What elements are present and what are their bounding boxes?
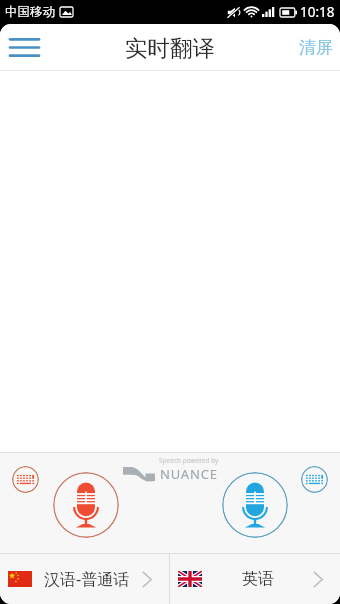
button[interactable]: Chinese keyboard input — [12, 466, 39, 493]
button[interactable]: Speak Chinese — [53, 472, 119, 538]
staticText: 英语 — [242, 569, 274, 589]
staticText: NUANCE — [160, 465, 218, 483]
button[interactable]: Speak English — [222, 472, 288, 538]
button[interactable]: English keyboard input — [301, 466, 328, 493]
staticText: 实时翻译 — [125, 34, 215, 62]
button[interactable]: 英语 — [170, 554, 340, 604]
staticText: 10:18 — [300, 3, 335, 21]
staticText: 汉语-普通话 — [44, 568, 130, 590]
button[interactable]: 清屏 — [292, 24, 340, 70]
staticText: Speech powered by — [159, 456, 219, 465]
staticText: 清屏 — [299, 37, 333, 58]
staticText: 中国移动 — [5, 4, 55, 20]
button[interactable]: 汉语-普通话 — [0, 554, 169, 604]
button[interactable]: Menu — [0, 24, 48, 70]
